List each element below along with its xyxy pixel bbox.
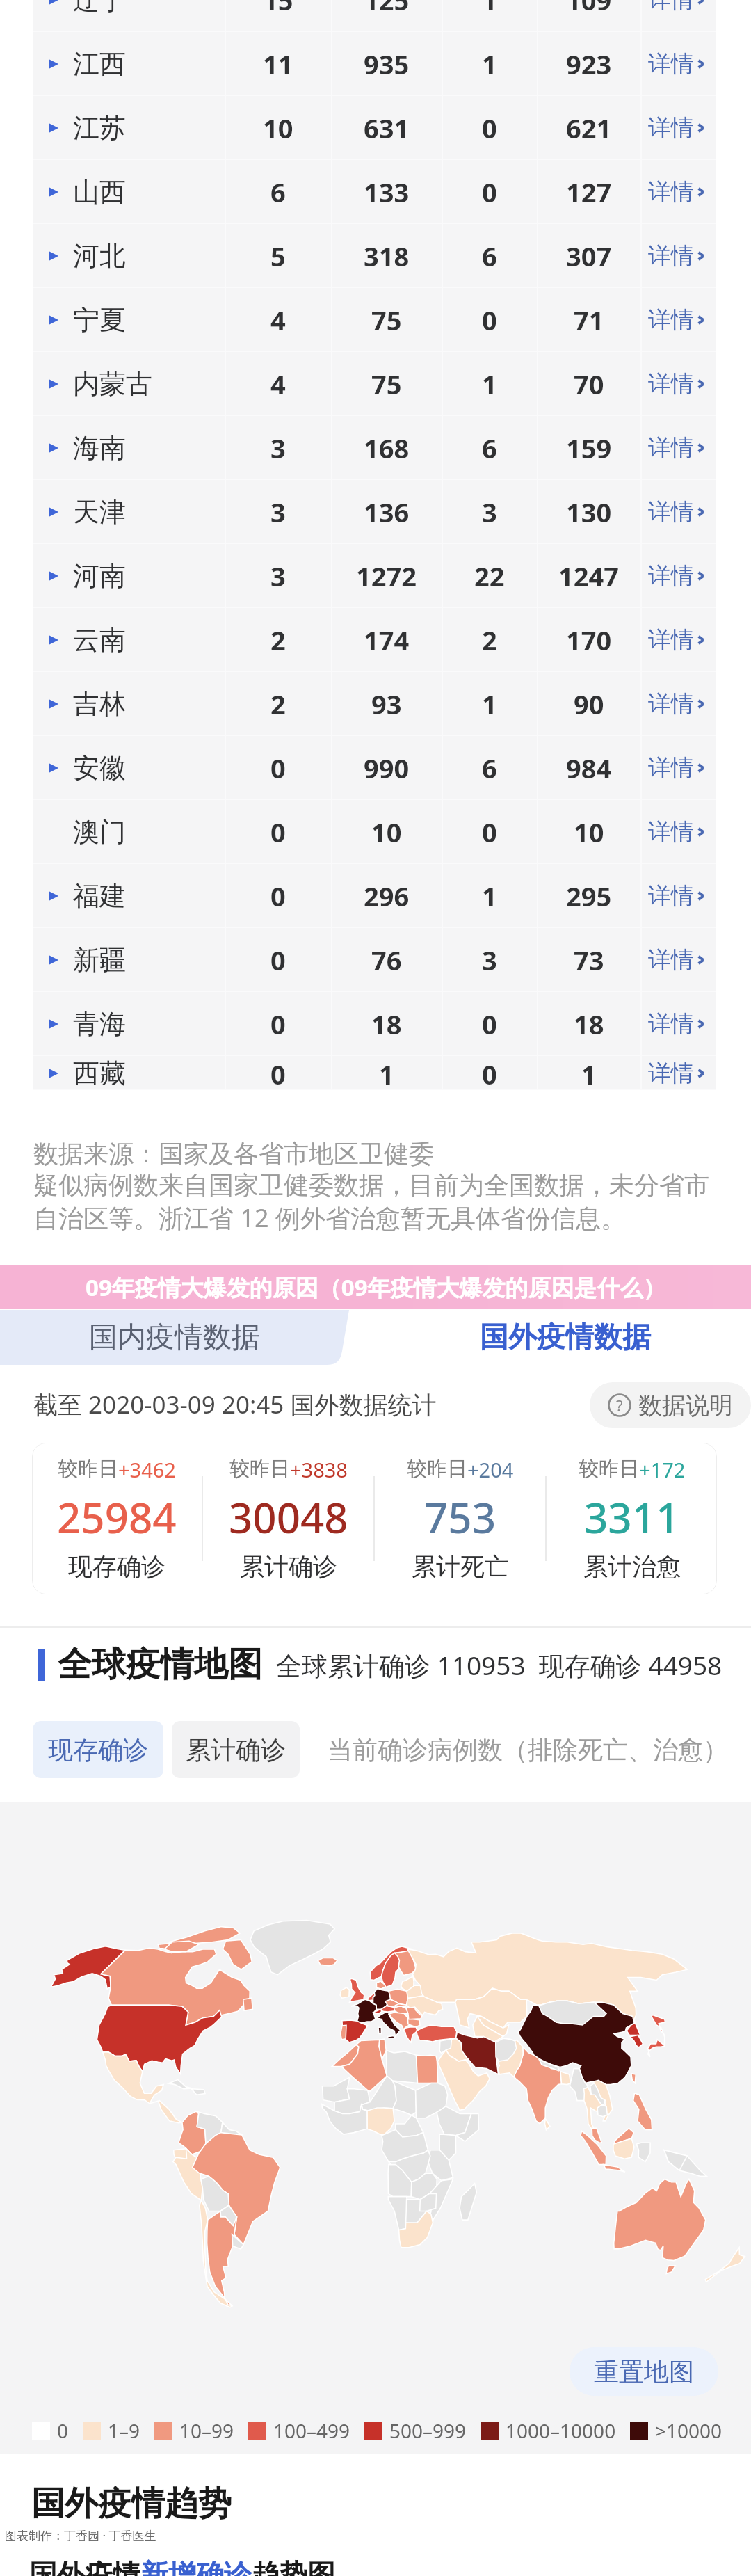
staticText: 1272 [356, 558, 417, 594]
staticText: 4 [270, 302, 286, 338]
button[interactable]: 福建 [33, 864, 716, 928]
staticText: 1247 [558, 558, 619, 594]
button[interactable]: 国内疫情数据 [0, 1309, 349, 1366]
staticText: 较昨日 [407, 1456, 467, 1482]
staticText: 500–999 [389, 2417, 467, 2444]
staticText: 10 [263, 110, 293, 146]
staticText: 国外疫情趋势 [31, 2483, 232, 2525]
staticText: 详情 [648, 1059, 694, 1088]
button[interactable]: 河北 [33, 224, 716, 288]
staticText: 168 [364, 430, 410, 466]
staticText: 75 [371, 302, 402, 338]
button[interactable]: 海南 [33, 416, 716, 480]
button[interactable]: 宁夏 [33, 288, 716, 352]
staticText: 青海 [73, 1007, 126, 1041]
button[interactable]: 云南 [33, 608, 716, 672]
button[interactable]: 青海 [33, 992, 716, 1056]
staticText: 趋势图 [252, 2557, 335, 2576]
staticText: 详情 [648, 625, 694, 655]
staticText: 1 [482, 46, 497, 82]
staticText: 云南 [73, 623, 126, 657]
staticText: 全球疫情地图 [58, 1643, 262, 1686]
button[interactable]: 新疆 [33, 928, 716, 992]
staticText: 18 [574, 1006, 604, 1042]
staticText: 2 [270, 622, 286, 658]
button[interactable]: 澳门 [33, 800, 716, 864]
staticText: 09年疫情大爆发的原因（09年疫情大爆发的原因是什么） [86, 1272, 666, 1303]
staticText: 福建 [73, 879, 126, 913]
staticText: 2 [482, 622, 497, 658]
button[interactable]: 西藏 [33, 1056, 716, 1090]
staticText: 307 [566, 238, 612, 274]
staticText: 10 [574, 814, 604, 850]
button[interactable]: 江苏 [33, 96, 716, 160]
staticText: 174 [364, 622, 410, 658]
button[interactable]: 内蒙古 [33, 352, 716, 416]
staticText: 全球累计确诊 110953 现存确诊 44958 [276, 1647, 722, 1683]
staticText: 130 [566, 494, 612, 530]
staticText: 详情 [648, 0, 694, 15]
staticText: 详情 [648, 945, 694, 975]
staticText: 3 [482, 494, 497, 530]
staticText: 累计治愈 [583, 1551, 681, 1582]
staticText: 10 [371, 814, 402, 850]
staticText: 详情 [648, 561, 694, 591]
staticText: 海南 [73, 431, 126, 465]
staticText: 1 [581, 1056, 597, 1090]
button[interactable]: 国外疫情数据 [379, 1309, 751, 1366]
button[interactable]: 安徽 [33, 736, 716, 800]
button[interactable]: 吉林 [33, 672, 716, 736]
staticText: 70 [574, 366, 604, 402]
button[interactable]: 辽宁 [33, 0, 716, 32]
staticText: 30048 [229, 1489, 348, 1546]
staticText: 天津 [73, 495, 126, 529]
staticText: 4 [270, 366, 286, 402]
button[interactable]: 重置地图 [570, 2347, 718, 2396]
staticText: 1000–10000 [506, 2417, 616, 2444]
staticText: 935 [364, 46, 410, 82]
staticText: 3 [482, 942, 497, 978]
staticText: 3311 [584, 1489, 680, 1546]
staticText: 11 [263, 46, 293, 82]
staticText: 图表制作：丁香园 · 丁香医生 [5, 2527, 156, 2543]
staticText: 0 [482, 1006, 497, 1042]
button[interactable]: 江西 [33, 32, 716, 96]
staticText: 辽宁 [73, 0, 126, 17]
button[interactable]: 山西 [33, 160, 716, 224]
button[interactable]: ? [608, 1382, 733, 1428]
staticText: 3 [270, 430, 286, 466]
staticText: 宁夏 [73, 303, 126, 337]
staticText: >10000 [655, 2417, 722, 2444]
staticText: 1 [482, 686, 497, 722]
staticText: 详情 [648, 497, 694, 527]
staticText: 新增确诊 [140, 2557, 252, 2576]
staticText: 0 [482, 1056, 497, 1090]
staticText: 较昨日 [58, 1456, 118, 1482]
staticText: 详情 [648, 241, 694, 271]
staticText: 0 [57, 2417, 69, 2444]
button[interactable]: 累计确诊 [186, 1721, 286, 1778]
staticText: 江苏 [73, 111, 126, 145]
staticText: 295 [566, 878, 612, 914]
staticText: 江西 [73, 47, 126, 81]
staticText: 159 [566, 430, 612, 466]
staticText: 累计死亡 [412, 1551, 509, 1582]
staticText: 18 [371, 1006, 402, 1042]
staticText: 现存确诊 [48, 1734, 148, 1766]
staticText: 621 [566, 110, 612, 146]
staticText: 6 [482, 238, 497, 274]
button[interactable]: 现存确诊 [48, 1721, 148, 1778]
staticText: 22 [474, 558, 505, 594]
staticText: 318 [364, 238, 410, 274]
button[interactable]: 河南 [33, 544, 716, 608]
staticText: 125 [364, 0, 410, 18]
staticText: 631 [364, 110, 410, 146]
staticText: 详情 [648, 49, 694, 79]
staticText: 0 [270, 814, 286, 850]
staticText: 10–99 [179, 2417, 234, 2444]
staticText: 109 [566, 0, 612, 18]
staticText: 923 [566, 46, 612, 82]
button[interactable]: 天津 [33, 480, 716, 544]
staticText: 较昨日 [229, 1456, 290, 1482]
staticText: 133 [364, 174, 410, 210]
